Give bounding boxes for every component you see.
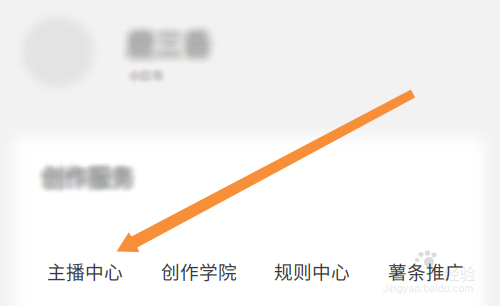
staticText: 鹿三香 — [129, 30, 213, 70]
staticText: 创作服务 — [40, 161, 132, 194]
staticText: 鹿三香 — [134, 23, 218, 64]
staticText: 鹿三香 — [123, 22, 207, 62]
staticText: 小红书 — [134, 68, 167, 83]
staticText: 小红书 — [128, 65, 161, 81]
staticText: 鹿三香 — [134, 18, 218, 58]
staticText: 创作服务 — [45, 159, 137, 192]
staticText: 鹿三香 — [132, 22, 216, 62]
staticText: 鹿三香 — [125, 27, 209, 68]
staticText: 鹿三香 — [125, 24, 209, 64]
staticText: 小红书 — [131, 70, 164, 85]
staticText: 小红书 — [132, 67, 165, 82]
staticText: 创作服务 — [41, 162, 133, 195]
staticText: 创作服务 — [43, 162, 135, 195]
staticText: 小红书 — [131, 66, 164, 81]
staticText: 鹿三香 — [129, 26, 213, 66]
staticText: 小红书 — [131, 66, 164, 81]
staticText: 鹿三香 — [131, 23, 215, 63]
staticText: 创作服务 — [40, 159, 132, 192]
staticText: 鹿三香 — [120, 21, 204, 61]
staticText: 创作服务 — [42, 162, 134, 194]
staticText: 创作服务 — [43, 159, 135, 192]
staticText: 鹿三香 — [128, 16, 212, 57]
staticText: 小红书 — [129, 71, 162, 86]
staticText: 鹿三香 — [127, 23, 211, 63]
staticText: 鹿三香 — [131, 21, 215, 61]
staticText: 创作服务 — [46, 159, 138, 192]
staticText: 小红书 — [127, 69, 160, 84]
staticText: 创作服务 — [38, 158, 130, 191]
staticText: 创作服务 — [42, 160, 134, 193]
staticText: 小红书 — [125, 64, 158, 80]
staticText: 创作服务 — [36, 160, 128, 193]
staticText: 创作服务 — [46, 161, 138, 194]
staticText: 鹿三香 — [122, 23, 206, 63]
staticText: 鹿三香 — [125, 19, 209, 59]
staticText: 创作服务 — [38, 161, 130, 194]
staticText: 小红书 — [126, 67, 159, 82]
staticText: 创作服务 — [38, 159, 130, 192]
staticText: 小红书 — [132, 66, 165, 81]
staticText: 鹿三香 — [131, 26, 215, 66]
staticText: 创作服务 — [45, 160, 137, 193]
staticText: 鹿三香 — [129, 24, 213, 64]
staticText: 鹿三香 — [130, 25, 214, 65]
staticText: 创作服务 — [42, 161, 134, 193]
staticText: 鹿三香 — [121, 25, 205, 66]
staticText: 小红书 — [125, 66, 158, 81]
staticText: 小红书 — [129, 67, 162, 82]
staticText: 创作服务 — [44, 157, 136, 190]
staticText: 鹿三香 — [126, 23, 210, 63]
staticText: 创作服务 — [39, 162, 131, 195]
staticText: 鹿三香 — [130, 24, 214, 64]
staticText: 小红书 — [133, 67, 166, 83]
button[interactable]: 主播中心 — [33, 253, 137, 289]
staticText: 鹿三香 — [124, 25, 208, 66]
staticText: 小红书 — [130, 68, 163, 83]
staticText: 创作服务 — [42, 161, 134, 194]
staticText: 鹿三香 — [123, 28, 207, 68]
staticText: 创作服务 — [43, 158, 135, 191]
staticText: 鹿三香 — [122, 28, 206, 69]
staticText: 创作服务 — [42, 160, 134, 193]
staticText: 小红书 — [126, 68, 159, 84]
staticText: 创作服务 — [38, 157, 130, 190]
button[interactable]: 薯条推广 — [374, 253, 478, 289]
staticText: 创作服务 — [41, 158, 133, 191]
staticText: 创作服务 — [40, 164, 132, 197]
staticText: 鹿三香 — [135, 28, 219, 68]
staticText: 小红书 — [129, 65, 162, 81]
staticText: 创作服务 — [41, 161, 133, 194]
staticText: 小红书 — [129, 66, 162, 81]
staticText: 小红书 — [132, 65, 165, 80]
staticText: 小红书 — [129, 69, 162, 84]
staticText: 鹿三香 — [132, 21, 216, 61]
staticText: 鹿三香 — [122, 30, 206, 71]
staticText: 创作服务 — [40, 157, 132, 190]
button[interactable]: 规则中心 — [260, 253, 364, 289]
staticText: 鹿三香 — [131, 17, 215, 57]
staticText: 创作服务 — [44, 157, 136, 190]
staticText: 小红书 — [129, 65, 162, 80]
staticText: 鹿三香 — [122, 25, 206, 66]
staticText: 小红书 — [130, 70, 163, 86]
staticText: 鹿三香 — [129, 19, 213, 59]
staticText: 鹿三香 — [130, 17, 214, 58]
staticText: 创作服务 — [40, 158, 132, 191]
staticText: 创作服务 — [39, 160, 131, 193]
staticText: 创作服务 — [41, 157, 133, 190]
staticText: 创作服务 — [39, 158, 131, 191]
staticText: 鹿三香 — [126, 24, 210, 65]
staticText: 主播中心 — [47, 257, 123, 284]
staticText: 创作服务 — [42, 157, 134, 190]
staticText: 小红书 — [125, 68, 158, 84]
staticText: 小红书 — [131, 68, 164, 83]
staticText: 创作服务 — [37, 158, 129, 191]
staticText: 小红书 — [128, 67, 161, 83]
staticText: 小红书 — [129, 66, 162, 82]
staticText: 创作服务 — [44, 164, 136, 197]
staticText: 鹿三香 — [127, 26, 211, 67]
staticText: 鹿三香 — [134, 26, 218, 66]
staticText: 鹿三香 — [130, 22, 214, 63]
button[interactable]: 创作学院 — [147, 253, 251, 289]
